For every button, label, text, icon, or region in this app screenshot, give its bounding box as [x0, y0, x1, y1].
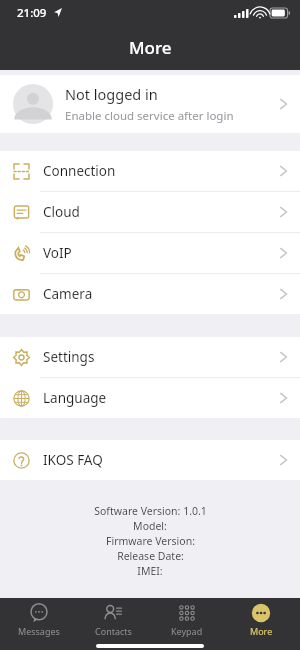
staticText: Release Date: [117, 549, 184, 563]
button[interactable]: Messages [4, 600, 74, 640]
button[interactable]: Not logged in [0, 75, 300, 133]
staticText: More [250, 625, 273, 637]
button[interactable]: Camera [0, 274, 300, 314]
staticText: Language [43, 389, 107, 407]
button[interactable]: Connection [0, 151, 300, 191]
staticText: IMEI: [137, 564, 163, 578]
staticText: Connection [43, 162, 116, 180]
button[interactable]: VoIP [0, 233, 300, 273]
staticText: IKOS FAQ [43, 451, 103, 469]
staticText: Camera [43, 285, 93, 303]
button[interactable]: Language [0, 378, 300, 418]
staticText: Firmware Version: [106, 534, 195, 548]
staticText: 21:09 [17, 5, 47, 21]
button[interactable]: Settings [0, 337, 300, 377]
button[interactable]: Cloud [0, 192, 300, 232]
staticText: Software Version: 1.0.1 [94, 504, 207, 518]
staticText: Contacts [95, 625, 132, 637]
staticText: More [129, 36, 172, 59]
staticText: Enable cloud service after login [65, 108, 234, 124]
staticText: Keypad [171, 625, 203, 637]
staticText: Not logged in [65, 84, 158, 104]
staticText: VoIP [43, 244, 72, 262]
staticText: Cloud [43, 203, 80, 221]
button[interactable]: IKOS FAQ [0, 440, 300, 480]
button[interactable]: Contacts [78, 600, 148, 640]
staticText: Messages [18, 625, 60, 637]
button[interactable]: Keypad [152, 600, 222, 640]
staticText: Model: [133, 519, 167, 533]
staticText: Settings [43, 348, 95, 366]
button[interactable]: More [226, 600, 296, 640]
